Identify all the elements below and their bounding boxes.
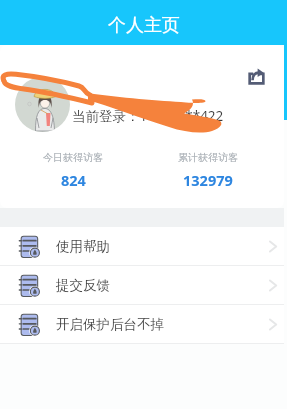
button[interactable]: Share [247,67,266,86]
staticText: 个人主页 [108,14,180,37]
button[interactable]: 提交反馈 [0,266,284,304]
button[interactable]: 使用帮助 [0,227,284,265]
staticText: 当前登录：1403****422 [72,107,224,125]
staticText: 累计获得访客 [178,151,238,164]
staticText: 提交反馈 [56,277,110,294]
staticText: 今日获得访客 [43,151,103,164]
staticText: 824 [61,170,86,190]
staticText: 开启保护后台不掉 [56,316,164,333]
staticText: 132979 [183,170,233,190]
staticText: 使用帮助 [56,238,110,255]
button[interactable]: 开启保护后台不掉 [0,305,284,343]
